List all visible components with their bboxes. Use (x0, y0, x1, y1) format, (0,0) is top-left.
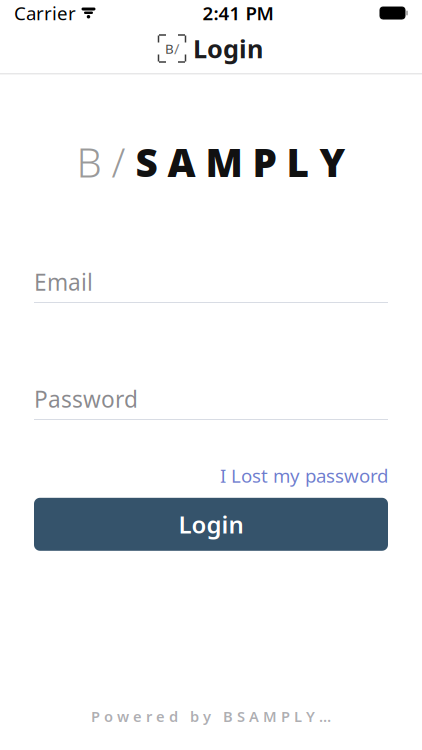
staticText: / (174, 39, 179, 58)
staticText: Carrier (14, 1, 76, 25)
staticText: P o w e r e d b y B S A M P L Y … (91, 706, 331, 726)
button[interactable]: Login (34, 498, 388, 551)
staticText: Email (34, 267, 93, 297)
staticText: Login (178, 508, 243, 540)
staticText: I Lost my password (220, 463, 388, 488)
staticText: / (101, 135, 135, 188)
staticText: Password (34, 384, 138, 414)
staticText: 2:41 PM (202, 1, 273, 25)
staticText: S A M P L Y (135, 136, 345, 188)
button[interactable]: I Lost my password (220, 463, 388, 488)
staticText: B (76, 135, 101, 188)
staticText: Login (193, 32, 263, 65)
staticText: B (165, 40, 174, 57)
